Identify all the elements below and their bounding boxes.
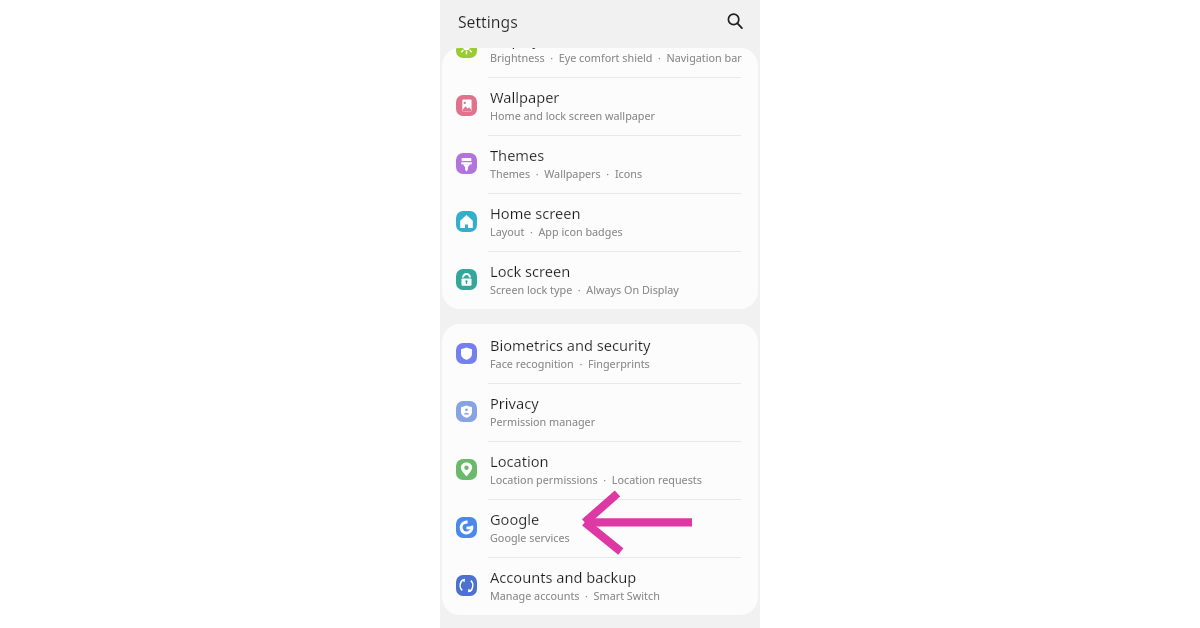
staticText: Biometrics and security [490,335,651,355]
button[interactable]: Themes [442,135,758,193]
staticText: Display [490,48,540,49]
staticText: Manage accounts · Smart Switch [490,588,660,603]
staticText: Privacy [490,393,539,413]
button[interactable]: Privacy [442,383,758,441]
staticText: Location [490,451,549,471]
button[interactable]: Search [713,4,743,34]
staticText: Themes [490,145,545,165]
staticText: Google [490,509,540,529]
button[interactable]: Location [442,441,758,499]
staticText: Home screen [490,203,581,223]
button[interactable]: Display [442,48,758,77]
staticText: Themes · Wallpapers · Icons [490,166,643,181]
staticText: Wallpaper [490,87,560,107]
button[interactable]: Lock screen [442,251,758,309]
staticText: Lock screen [490,261,571,281]
staticText: Settings [458,11,518,32]
button[interactable]: Accounts and backup [442,557,758,615]
staticText: Layout · App icon badges [490,224,623,239]
staticText: Screen lock type · Always On Display [490,282,679,297]
button[interactable]: Biometrics and security [442,325,758,383]
staticText: Brightness · Eye comfort shield · Naviga… [490,50,742,65]
button[interactable]: Home screen [442,193,758,251]
staticText: Accounts and backup [490,567,637,587]
staticText: Location permissions · Location requests [490,472,702,487]
button[interactable]: Google [442,499,758,557]
staticText: Google services [490,530,570,545]
staticText: Permission manager [490,414,596,429]
staticText: Face recognition · Fingerprints [490,356,650,371]
staticText: Home and lock screen wallpaper [490,108,656,123]
button[interactable]: Wallpaper [442,77,758,135]
